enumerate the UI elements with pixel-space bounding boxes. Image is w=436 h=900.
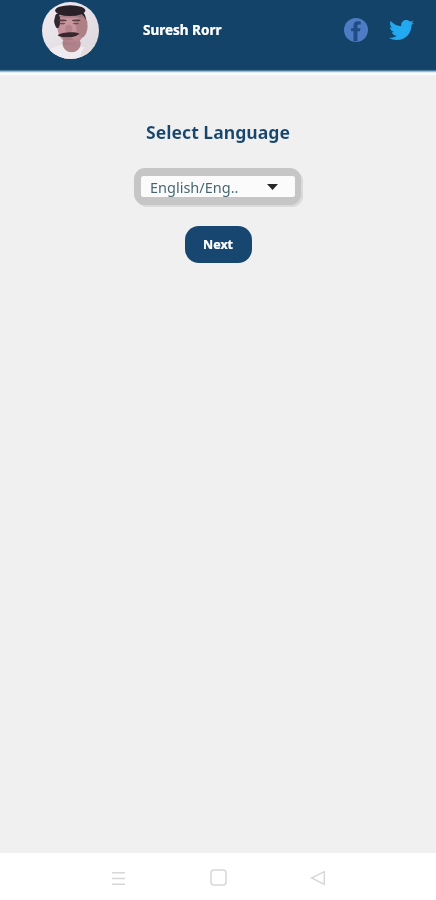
button[interactable]: Home [194,854,242,900]
button[interactable]: Profile [42,2,99,59]
staticText: Next [203,236,234,253]
button[interactable]: Facebook [338,12,374,48]
button[interactable]: English/Eng.. [134,168,301,205]
staticText: Suresh Rorr [143,21,222,39]
button[interactable]: Recent apps [94,855,142,900]
staticText: English/Eng.. [150,177,239,197]
button[interactable]: Twitter [383,12,419,48]
button[interactable]: Back [294,854,342,900]
button[interactable]: Next [185,226,252,263]
staticText: Select Language [0,120,436,144]
